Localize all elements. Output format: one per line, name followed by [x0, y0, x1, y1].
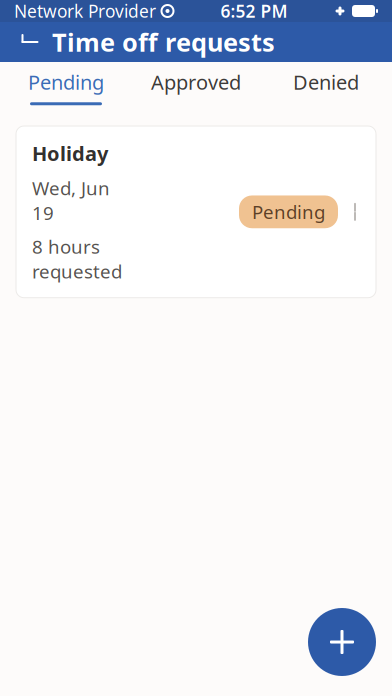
- staticText: 6:52 PM: [220, 0, 287, 22]
- button[interactable]: New time off request: [308, 608, 376, 676]
- button[interactable]: Approved: [131, 62, 261, 112]
- staticText: Network Provider: [14, 0, 156, 22]
- button[interactable]: Pending: [1, 62, 131, 112]
- button[interactable]: Denied: [261, 62, 391, 112]
- staticText: Pending: [252, 199, 325, 224]
- staticText: 8 hours requested: [32, 234, 122, 284]
- staticText: Wed, Jun 19: [32, 176, 110, 225]
- staticText: Denied: [293, 69, 359, 95]
- staticText: Holiday: [32, 140, 108, 167]
- staticText: Pending: [28, 69, 104, 95]
- button[interactable]: Back: [8, 22, 52, 62]
- staticText: Approved: [151, 69, 241, 95]
- button[interactable]: Holiday: [16, 126, 376, 298]
- staticText: Time off requests: [52, 25, 275, 59]
